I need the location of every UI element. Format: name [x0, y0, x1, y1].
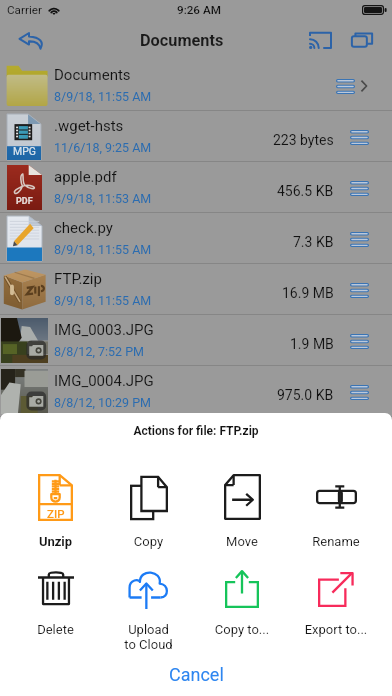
staticText: Unzip [9, 534, 102, 549]
button[interactable]: Rename [289, 460, 383, 549]
staticText: MPG [13, 145, 36, 157]
staticText: 223 bytes [273, 132, 334, 148]
staticText: IMG_0004.JPG [54, 372, 154, 390]
button[interactable]: Back [9, 20, 53, 60]
staticText: FTP.zip [54, 270, 102, 288]
button[interactable]: ZIP [9, 460, 102, 549]
button[interactable]: IMG_0003.JPG [0, 315, 392, 366]
staticText: PDF [16, 196, 33, 207]
staticText: Move [195, 534, 289, 549]
button[interactable]: Delete [9, 555, 102, 637]
button[interactable]: Reorder [344, 222, 374, 256]
staticText: Copy to... [195, 622, 289, 637]
button[interactable]: Copy to... [195, 555, 289, 637]
staticText: 16.9 MB [282, 285, 334, 301]
staticText: IMG_0003.JPG [54, 321, 154, 339]
staticText: 8/9/18, 11:53 AM [54, 191, 152, 206]
staticText: Export to... [289, 622, 383, 637]
button[interactable]: Cancel [0, 657, 392, 691]
button[interactable]: Move [195, 460, 289, 549]
staticText: 1.9 MB [290, 336, 334, 352]
staticText: ZIP [47, 507, 65, 520]
button[interactable]: Reorder [344, 273, 374, 307]
button[interactable]: MPG [0, 111, 392, 162]
staticText: 8/8/12, 7:52 PM [54, 344, 144, 359]
button[interactable]: Windows [341, 20, 383, 60]
button[interactable]: Reorder [344, 375, 374, 409]
staticText: Copy [102, 534, 195, 549]
staticText: Carrier [7, 3, 42, 17]
staticText: Delete [9, 622, 102, 637]
button[interactable]: Copy [102, 460, 195, 549]
button[interactable]: Reorder [344, 120, 374, 154]
button[interactable]: Documents [0, 60, 392, 111]
staticText: Cancel [169, 664, 224, 685]
staticText: check.py [54, 219, 113, 237]
button[interactable]: IMG_0004.JPG [0, 366, 392, 417]
staticText: Documents [54, 66, 131, 84]
staticText: 456.5 KB [277, 183, 334, 199]
button[interactable]: PDF [0, 162, 392, 213]
staticText: Documents [140, 31, 224, 50]
staticText: 8/9/18, 11:55 AM [54, 242, 152, 257]
button[interactable]: FTP.zip [0, 264, 392, 315]
staticText: 7.3 KB [293, 234, 334, 250]
button[interactable]: check.py [0, 213, 392, 264]
staticText: 9:26 AM [177, 3, 221, 17]
staticText: Actions for file: FTP.zip [0, 424, 392, 438]
button[interactable]: Reorder [344, 171, 374, 205]
staticText: 11/6/18, 9:25 AM [54, 140, 152, 155]
button[interactable]: Reorder [330, 69, 360, 103]
staticText: Rename [289, 534, 383, 549]
button[interactable]: Export to... [289, 555, 383, 637]
staticText: 8/9/18, 11:55 AM [54, 89, 152, 104]
staticText: Upload to Cloud [102, 622, 195, 652]
staticText: 975.0 KB [277, 387, 334, 403]
staticText: .wget-hsts [54, 117, 124, 135]
button[interactable]: Cast [299, 20, 341, 60]
staticText: apple.pdf [54, 168, 117, 186]
button[interactable]: Reorder [344, 324, 374, 358]
button[interactable]: Upload to Cloud [102, 555, 195, 652]
staticText: 8/9/18, 11:55 AM [54, 293, 152, 308]
staticText: 8/8/12, 10:29 PM [54, 395, 152, 410]
